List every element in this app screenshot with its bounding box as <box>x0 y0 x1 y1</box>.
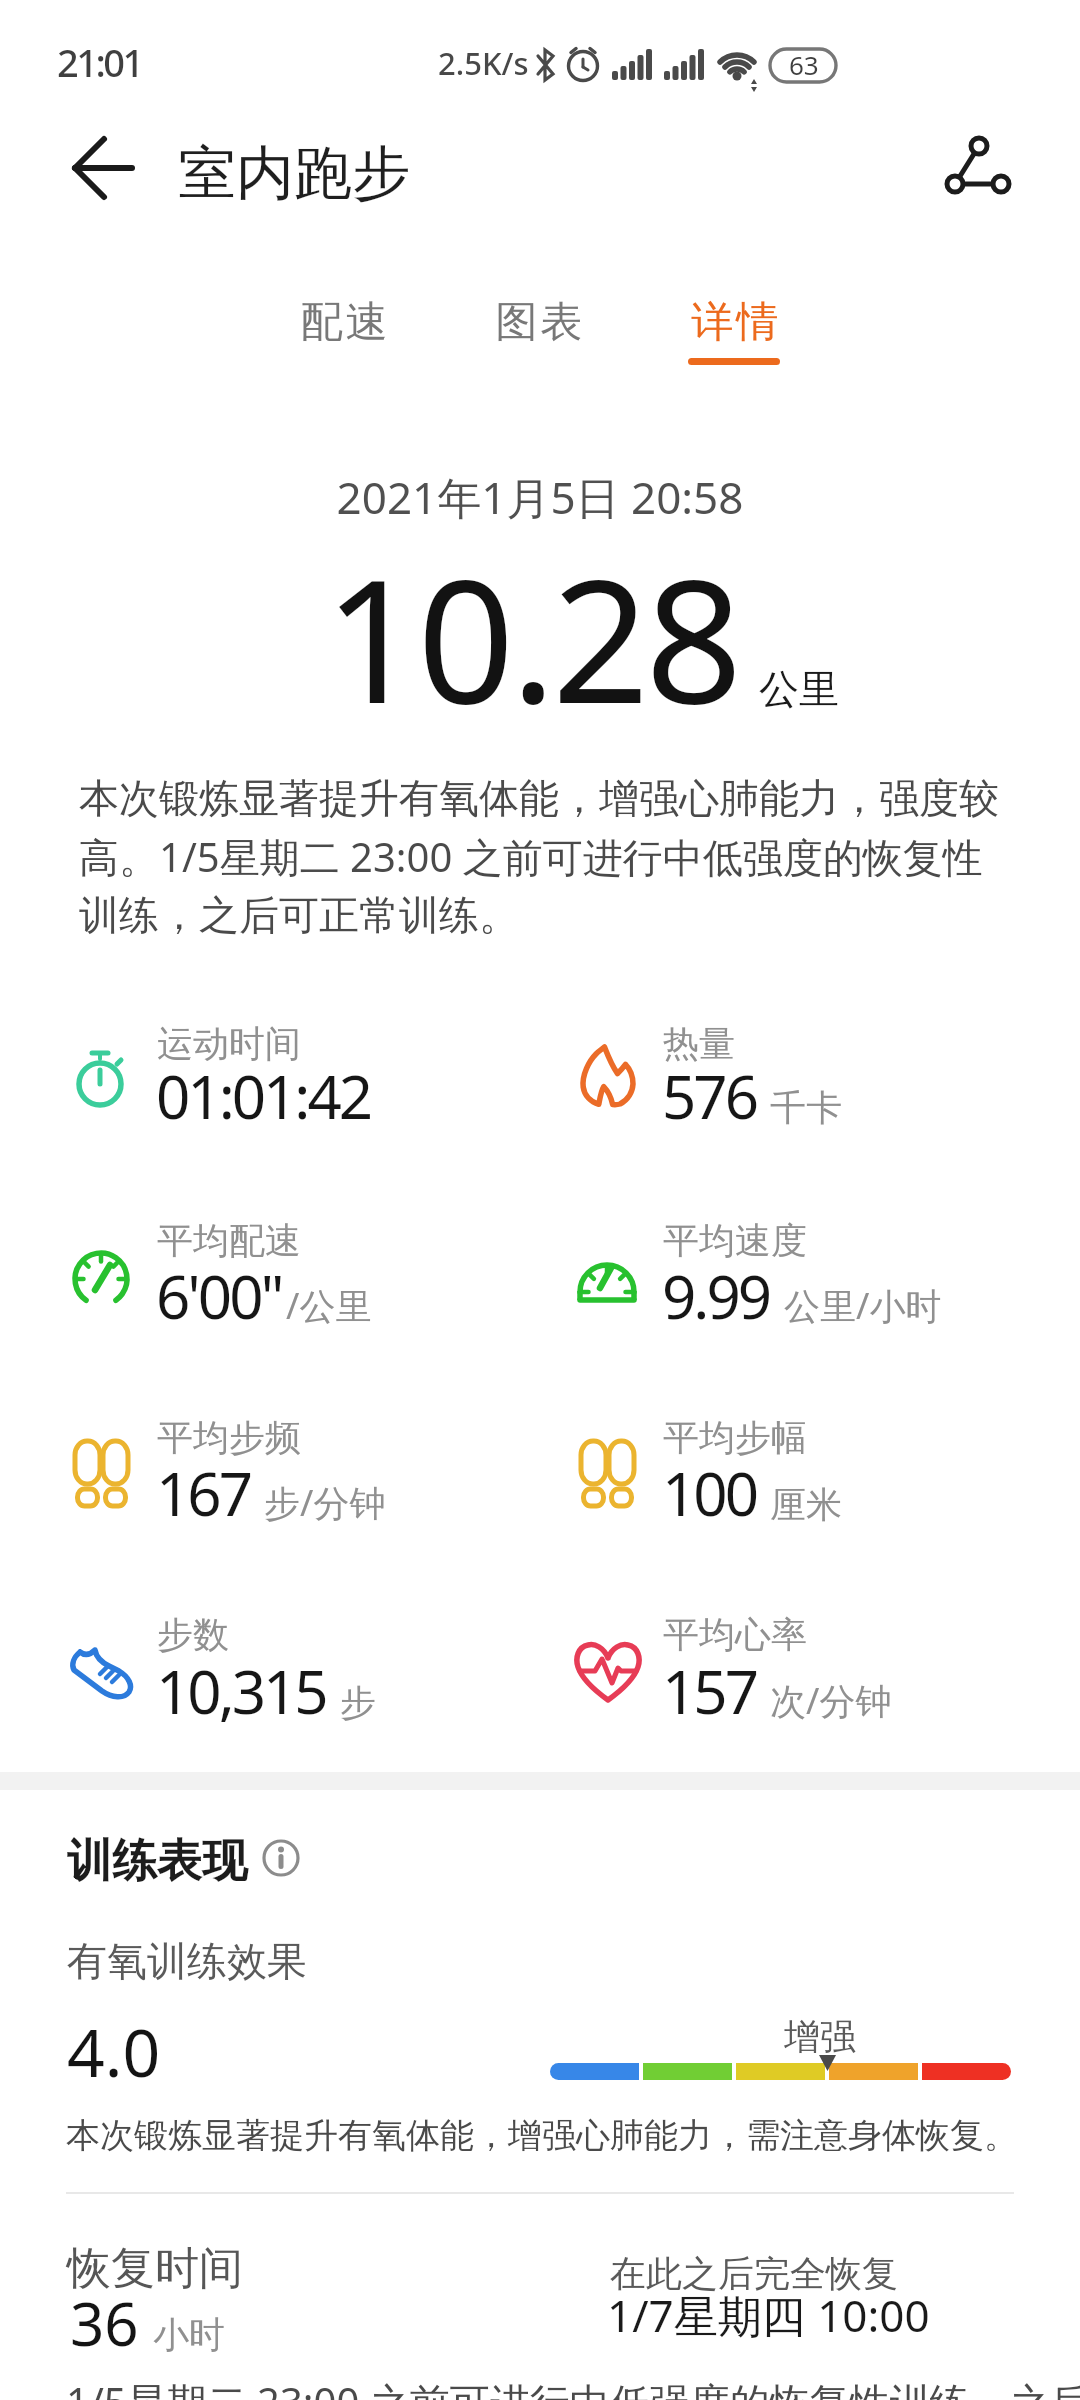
staticText: 平均步频 <box>157 1415 301 1460</box>
staticText: 100 <box>662 1452 756 1534</box>
button[interactable] <box>255 1835 303 1883</box>
button[interactable] <box>920 115 1030 215</box>
staticText: 10,315 <box>156 1650 326 1732</box>
staticText: 576 <box>662 1055 756 1137</box>
staticText: 训练表现 <box>67 1833 247 1890</box>
staticText: 9.99 <box>662 1255 770 1337</box>
staticText: 千卡 <box>770 1085 842 1130</box>
staticText: 图表 <box>494 296 584 349</box>
button[interactable] <box>465 270 615 370</box>
button[interactable] <box>660 270 810 370</box>
staticText: 本次锻炼显著提升有氧体能，增强心肺能力，强度较 高。1/5星期二 23:00 之… <box>79 773 999 941</box>
staticText: 平均心率 <box>663 1612 807 1657</box>
staticText: 157 <box>662 1650 756 1732</box>
staticText: 热量 <box>663 1021 735 1066</box>
staticText: 21:01 <box>57 36 142 88</box>
staticText: 步/分钟 <box>264 1478 386 1527</box>
staticText: 在此之后完全恢复 <box>610 2251 898 2296</box>
staticText: 36 <box>70 2282 139 2364</box>
button[interactable] <box>270 270 420 370</box>
staticText: 平均配速 <box>157 1218 301 1263</box>
staticText: 10.28 <box>324 521 739 753</box>
staticText: 167 <box>156 1452 250 1534</box>
staticText: 4.0 <box>67 2006 161 2096</box>
staticText: 2.5K/s <box>438 42 529 84</box>
staticText: 小时 <box>153 2312 225 2357</box>
staticText: 公里/小时 <box>784 1281 942 1330</box>
staticText: 公里 <box>759 664 839 714</box>
staticText: 运动时间 <box>157 1021 301 1066</box>
staticText: 6'00'' <box>156 1255 282 1337</box>
staticText: 平均速度 <box>663 1218 807 1263</box>
staticText: 增强 <box>784 2014 856 2059</box>
staticText: 2021年1月5日 20:58 <box>0 467 1080 527</box>
staticText: 1/7星期四 10:00 <box>607 2285 930 2345</box>
button[interactable] <box>40 120 150 220</box>
staticText: 次/分钟 <box>770 1676 892 1725</box>
staticText: 配速 <box>299 296 389 349</box>
staticText: 平均步幅 <box>663 1415 807 1460</box>
staticText: 详情 <box>690 296 780 349</box>
staticText: 1/5星期二 23:00 之前可进行中低强度的恢复性训练，之后可正常 <box>66 2374 1080 2400</box>
staticText: 恢复时间 <box>67 2241 243 2296</box>
staticText: 厘米 <box>770 1482 842 1527</box>
staticText: 本次锻炼显著提升有氧体能，增强心肺能力，需注意身体恢复。 <box>66 2114 1018 2157</box>
staticText: /公里 <box>286 1281 372 1330</box>
staticText: 步 <box>340 1680 376 1725</box>
staticText: 有氧训练效果 <box>67 1936 307 1986</box>
staticText: 63 <box>789 47 819 82</box>
staticText: 01:01:42 <box>156 1055 371 1137</box>
staticText: 步数 <box>157 1612 229 1657</box>
staticText: 室内跑步 <box>178 137 410 210</box>
